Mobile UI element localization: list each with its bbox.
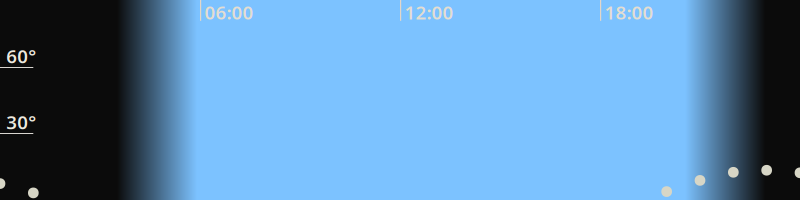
staticText: 30° xyxy=(6,110,36,134)
staticText: 60° xyxy=(6,44,36,68)
staticText: 18:00 xyxy=(604,0,653,25)
staticText: 12:00 xyxy=(404,0,453,25)
staticText: 06:00 xyxy=(204,0,253,25)
